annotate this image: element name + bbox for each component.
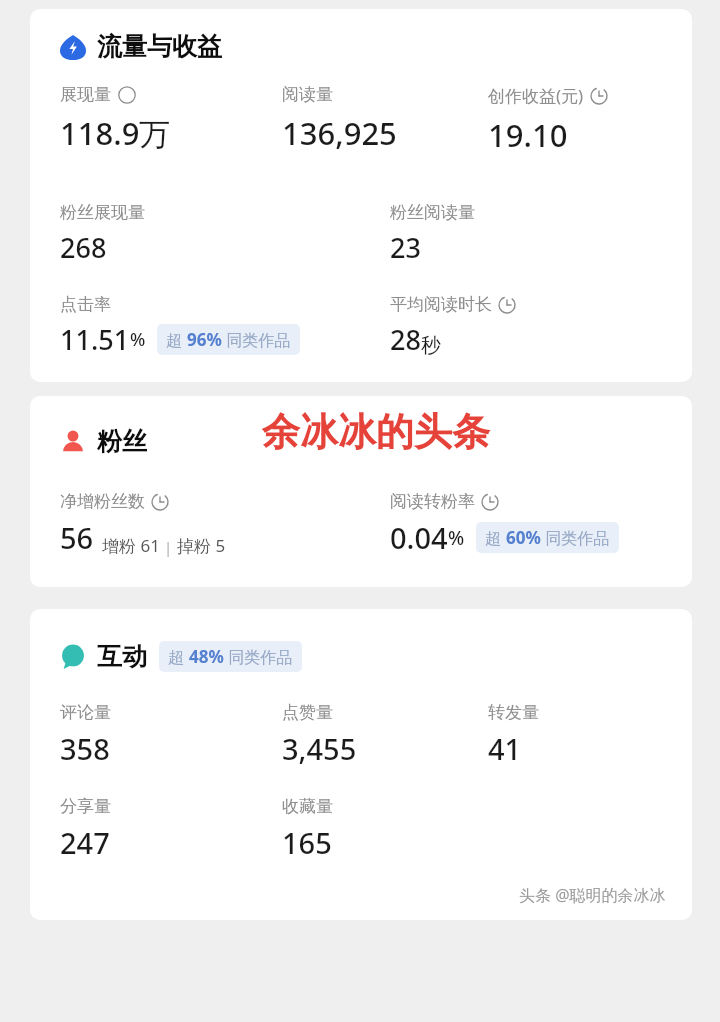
staticText: 118.9万 [60, 112, 171, 154]
staticText: 0.04 [390, 518, 448, 557]
button[interactable]: 超 [159, 641, 302, 672]
staticText: 头条 @聪明的余冰冰 [519, 884, 666, 906]
staticText: 阅读量 [282, 84, 333, 105]
button[interactable]: 超 [476, 522, 619, 553]
staticText: 超 [166, 329, 187, 351]
staticText: 创作收益(元) [488, 84, 584, 107]
staticText: 秒 [421, 333, 441, 358]
staticText: 收藏量 [282, 796, 333, 817]
staticText: 超 [168, 646, 189, 668]
staticText: 粉丝展现量 [60, 202, 145, 223]
staticText: 96% [187, 328, 222, 351]
staticText: 粉丝 [97, 426, 147, 457]
staticText: % [448, 525, 465, 551]
staticText: 11.51 [60, 321, 130, 358]
staticText: % [130, 327, 146, 352]
staticText: 超 [485, 527, 506, 549]
button[interactable]: Interaction [60, 644, 86, 670]
staticText: 互动 [97, 641, 147, 672]
staticText: 平均阅读时长 [390, 294, 492, 315]
staticText: 转发量 [488, 702, 539, 723]
staticText: 粉丝阅读量 [390, 202, 475, 223]
staticText: 23 [390, 229, 421, 266]
staticText: 同类作品 [541, 527, 610, 549]
staticText: 48% [189, 645, 224, 668]
staticText: 余冰冰的头条 [262, 408, 490, 456]
staticText: 点击率 [60, 294, 111, 315]
button[interactable]: 超 [157, 324, 300, 355]
staticText: 评论量 [60, 702, 111, 723]
other: Updated [498, 296, 516, 314]
staticText: 阅读转粉率 [390, 491, 475, 512]
other: Help [118, 86, 136, 104]
button[interactable]: 粉丝 [60, 426, 147, 457]
button[interactable]: 流量与收益 [60, 31, 222, 62]
staticText: 分享量 [60, 796, 111, 817]
staticText: 136,925 [282, 112, 397, 154]
staticText: 41 [488, 729, 522, 768]
staticText: 掉粉 5 [177, 534, 226, 557]
staticText: 28 [390, 321, 421, 358]
staticText: 60% [506, 526, 541, 549]
staticText: 56 [60, 518, 94, 557]
staticText: 净增粉丝数 [60, 491, 145, 512]
staticText: 增粉 61 [102, 534, 160, 557]
other: Updated [590, 87, 608, 105]
staticText: 同类作品 [224, 646, 293, 668]
staticText: 展现量 [60, 84, 111, 105]
staticText: 19.10 [488, 114, 568, 156]
other: Updated [481, 493, 499, 511]
staticText: 流量与收益 [97, 31, 222, 62]
staticText: 同类作品 [222, 329, 291, 351]
staticText: 268 [60, 229, 107, 266]
other: Updated [151, 493, 169, 511]
staticText: 358 [60, 729, 110, 768]
staticText: | [160, 537, 177, 557]
staticText: 247 [60, 823, 110, 862]
staticText: 165 [282, 823, 332, 862]
staticText: 3,455 [282, 729, 357, 768]
staticText: 点赞量 [282, 702, 333, 723]
